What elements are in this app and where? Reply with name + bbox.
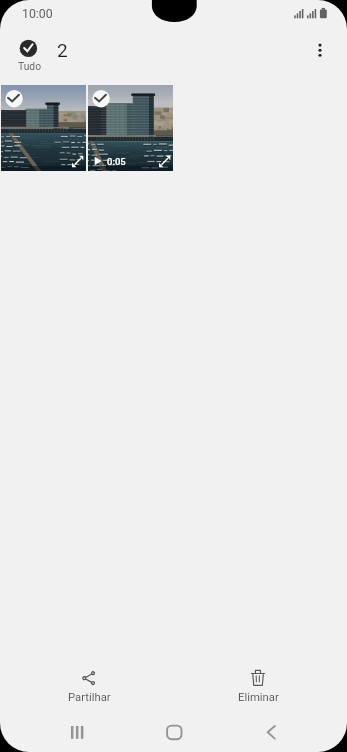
staticText: Tudo (18, 60, 42, 72)
staticText: 10:00 (22, 7, 53, 21)
button[interactable]: Home (154, 714, 194, 752)
staticText: Eliminar (238, 691, 279, 704)
button[interactable]: Back (251, 714, 291, 752)
staticText: Partilhar (68, 691, 111, 704)
staticText: 0:05 (107, 156, 126, 167)
button[interactable]: Tudo (14, 36, 44, 74)
button[interactable]: Photo (1, 85, 86, 171)
button[interactable]: Video (88, 85, 173, 171)
button[interactable]: Partilhar (49, 662, 129, 710)
staticText: 2 (57, 39, 68, 61)
button[interactable]: Eliminar (218, 662, 298, 710)
button[interactable]: More options (306, 36, 334, 64)
button[interactable]: Recent apps (57, 714, 97, 752)
